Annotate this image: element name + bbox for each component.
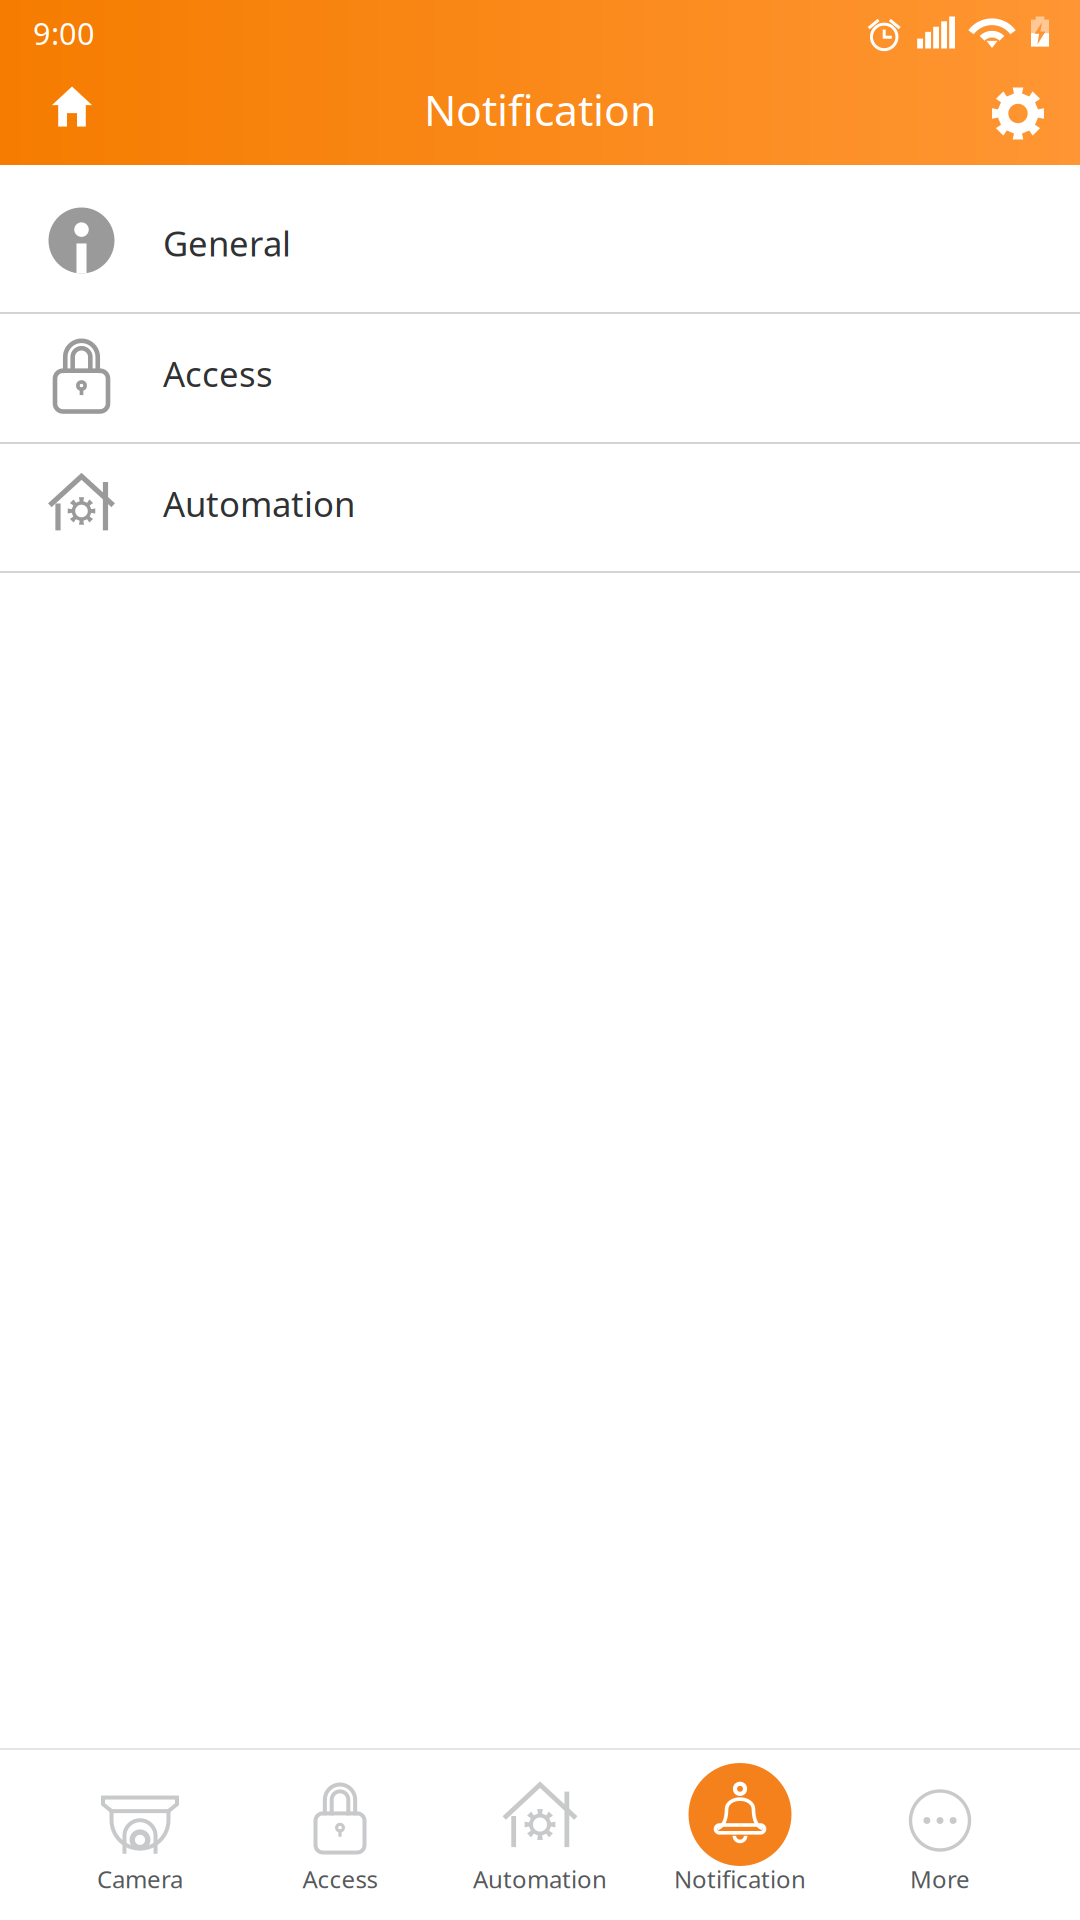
- staticText: Notification: [674, 1863, 806, 1895]
- button[interactable]: Access: [240, 1748, 440, 1920]
- staticText: General: [163, 220, 291, 266]
- staticText: Camera: [97, 1863, 183, 1895]
- button[interactable]: General: [0, 165, 1080, 312]
- staticText: Notification: [424, 81, 656, 138]
- button[interactable]: Automation: [440, 1748, 640, 1920]
- button[interactable]: Home: [24, 65, 120, 161]
- staticText: Automation: [163, 480, 355, 526]
- staticText: Access: [302, 1863, 377, 1895]
- button[interactable]: More: [840, 1748, 1040, 1920]
- staticText: Automation: [473, 1863, 607, 1895]
- staticText: 9:00: [33, 13, 95, 53]
- staticText: More: [910, 1863, 970, 1895]
- button[interactable]: Settings: [970, 65, 1066, 161]
- staticText: Access: [163, 350, 273, 396]
- button[interactable]: Camera: [40, 1748, 240, 1920]
- button[interactable]: Notification: [640, 1748, 840, 1920]
- button[interactable]: Automation: [0, 444, 1080, 571]
- button[interactable]: Access: [0, 314, 1080, 442]
